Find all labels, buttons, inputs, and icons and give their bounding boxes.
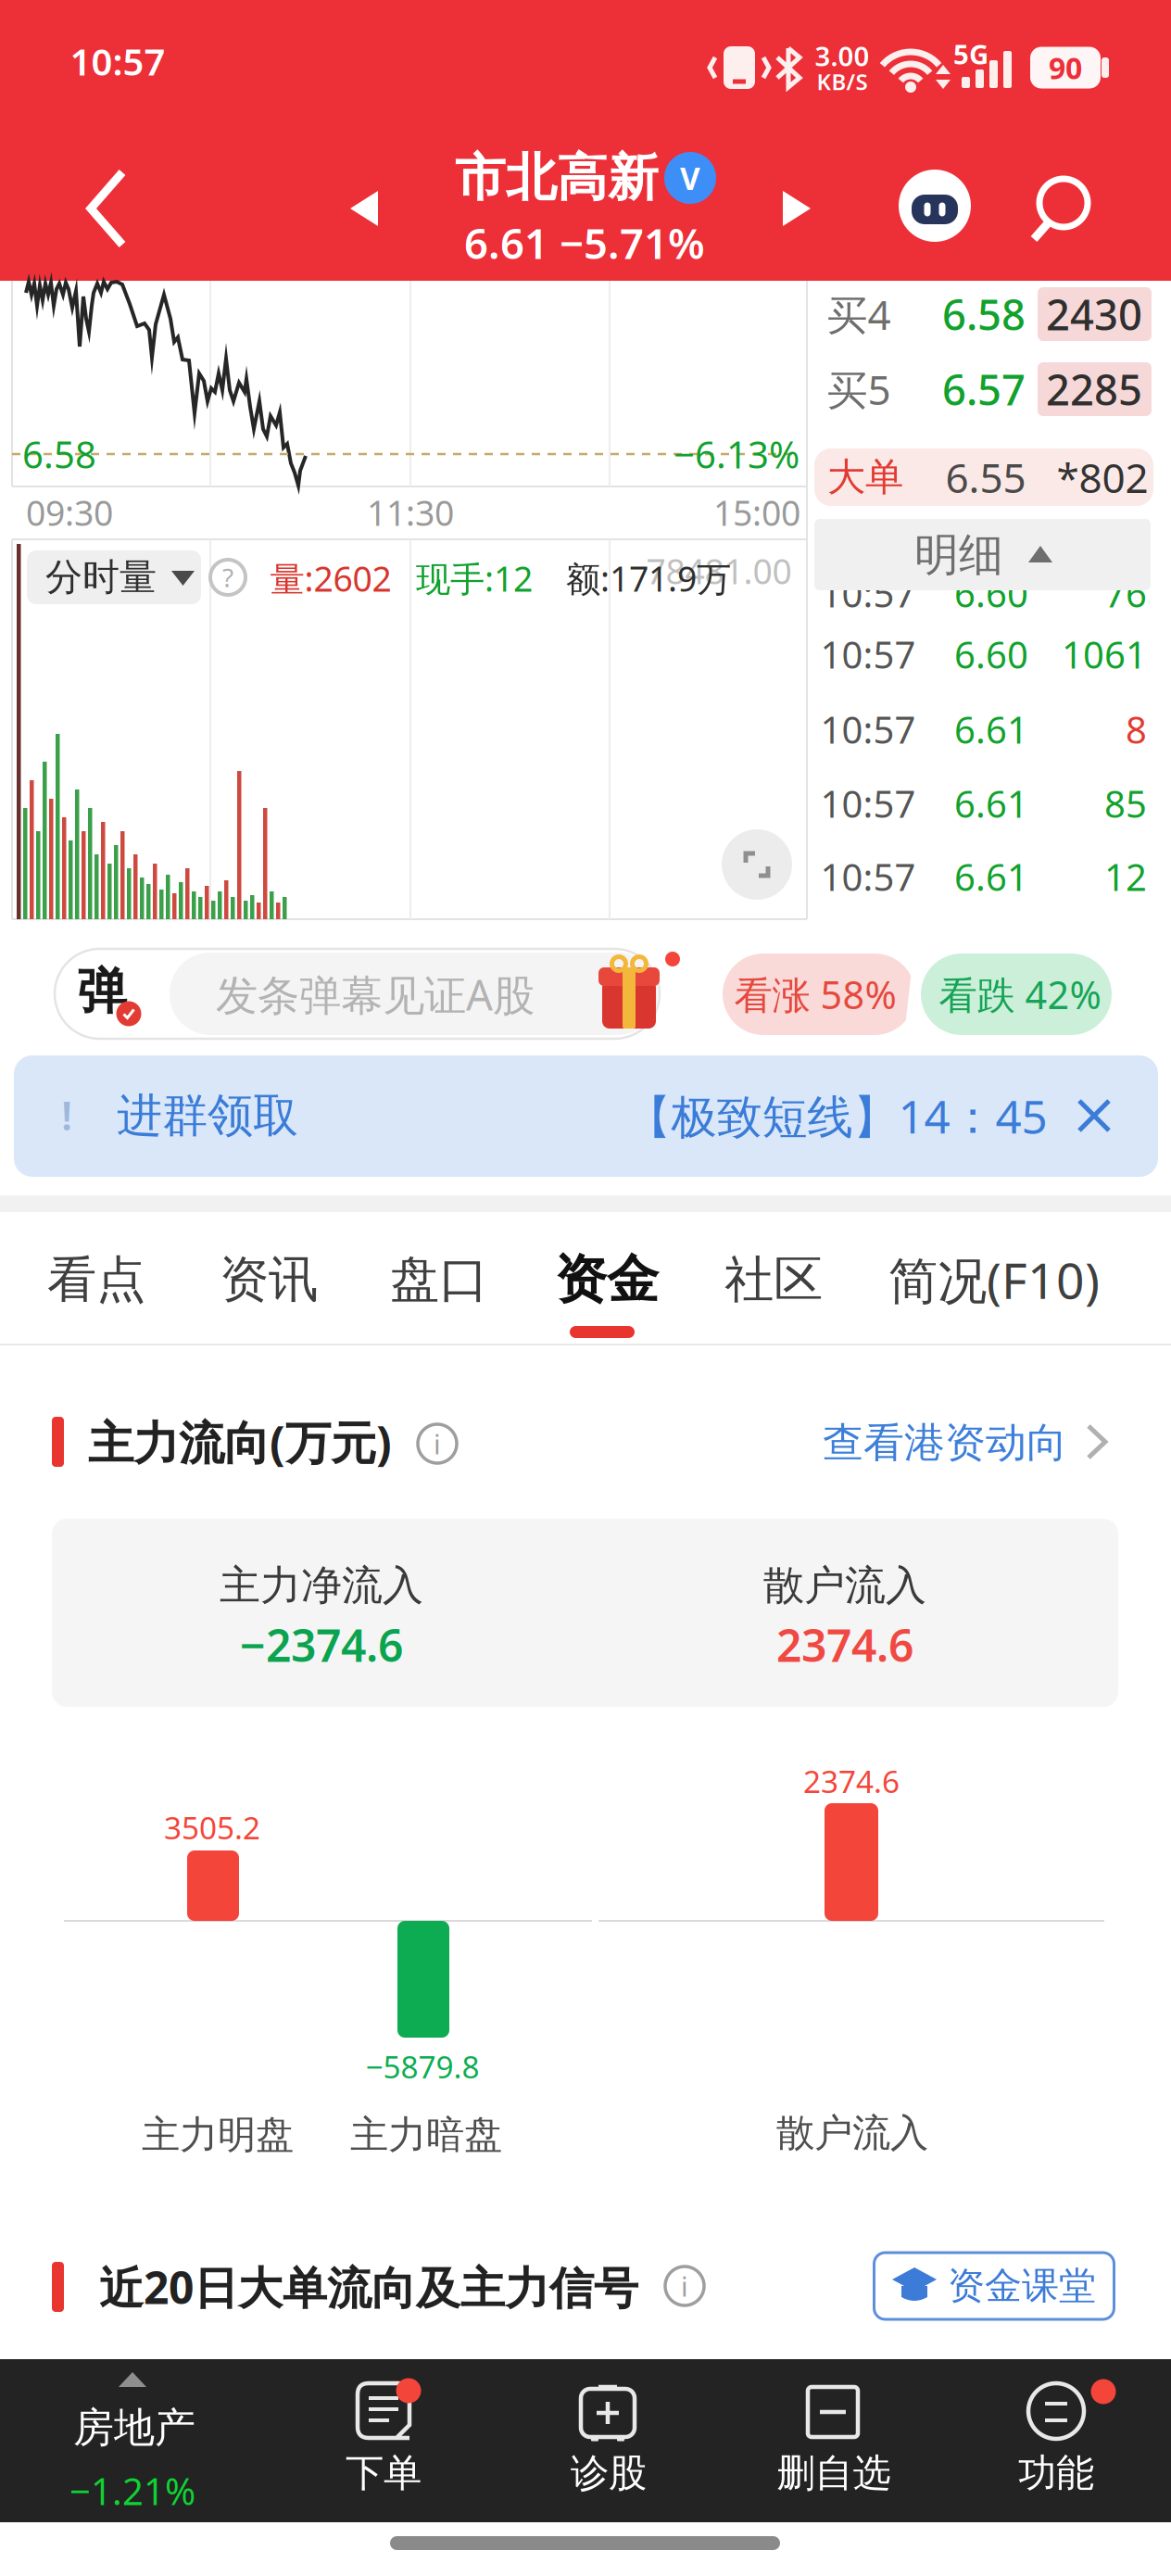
staticText: ? (222, 560, 233, 595)
button[interactable]: Assistant (899, 170, 971, 242)
staticText: 看跌 42% (939, 969, 1101, 1020)
staticText: 散户流入 (763, 1560, 926, 1610)
staticText: 09:30 (26, 489, 113, 535)
staticText: 分时量 (45, 554, 157, 600)
button[interactable]: 诊股 (534, 2359, 682, 2522)
staticText: 市北高新 (455, 147, 659, 209)
staticText: −1.21% (69, 2466, 195, 2515)
button[interactable]: 查看港资动向 (827, 1420, 1114, 1466)
staticText: 明细 (914, 528, 1003, 582)
staticText: 看涨 58% (734, 969, 896, 1020)
button[interactable]: Volume type selector (27, 550, 201, 604)
staticText: 主力流向(万元) (88, 1411, 392, 1472)
staticText: 5G (953, 36, 988, 72)
staticText: 买5 (827, 362, 891, 416)
staticText: 弹 (77, 961, 126, 1022)
button[interactable]: 看跌 42% (921, 953, 1112, 1035)
staticText: 6.61 −5.71% (464, 215, 705, 271)
staticText: 删自选 (777, 2450, 891, 2497)
staticText: 76 (1104, 568, 1147, 618)
staticText: 查看港资动向 (823, 1418, 1067, 1468)
staticText: 85 (1104, 779, 1147, 828)
staticText: 现手:12 (416, 555, 533, 601)
button[interactable]: 盘口 (390, 1249, 488, 1310)
staticText: 78481.00 (646, 548, 792, 594)
button[interactable]: 删自选 (754, 2359, 912, 2522)
staticText: 10:57 (820, 568, 916, 618)
staticText: 进群领取 (117, 1088, 298, 1144)
button[interactable]: 简况(F10) (888, 1247, 1100, 1312)
staticText: 90 (1049, 48, 1082, 87)
staticText: 大单 (827, 454, 903, 501)
staticText: 主力暗盘 (350, 2111, 502, 2158)
button[interactable]: 房地产 (42, 2359, 227, 2522)
staticText: 近20日大单流向及主力信号 (99, 2257, 638, 2316)
button[interactable]: 看点 (47, 1249, 145, 1310)
staticText: 6.61 (954, 852, 1028, 901)
button[interactable]: Gift (598, 964, 660, 1030)
staticText: 发条弹幕见证A股 (216, 966, 535, 1022)
button[interactable]: 下单 (309, 2359, 458, 2522)
staticText: 2374.6 (803, 1760, 900, 1802)
staticText: 资金课堂 (948, 2263, 1096, 2309)
staticText: 看点 (47, 1249, 145, 1310)
staticText: 6.60 (954, 568, 1028, 618)
staticText: 1061 (1062, 630, 1147, 679)
staticText: 6.60 (954, 630, 1028, 679)
staticText: 买4 (827, 287, 891, 341)
button[interactable]: Expand chart (722, 829, 792, 900)
staticText: 2430 (1046, 286, 1142, 342)
staticText: 简况(F10) (888, 1247, 1100, 1312)
button[interactable]: About big orders (664, 2266, 705, 2306)
staticText: 下单 (346, 2450, 422, 2497)
staticText: KB/S (817, 67, 868, 96)
button[interactable]: 大单 (814, 448, 1153, 506)
staticText: −2374.6 (240, 1615, 403, 1674)
staticText: −5879.8 (365, 2046, 479, 2087)
staticText: 3.00 (815, 38, 869, 74)
staticText: 盘口 (390, 1249, 488, 1310)
staticText: 10:57 (820, 852, 916, 901)
button[interactable]: 社区 (724, 1249, 823, 1310)
button[interactable]: 资金课堂 (874, 2253, 1114, 2319)
button[interactable]: Search (1030, 172, 1101, 246)
staticText: 3505.2 (164, 1807, 260, 1848)
button[interactable]: Back (85, 167, 130, 250)
staticText: −6.13% (674, 429, 800, 479)
staticText: 6.57 (942, 361, 1026, 417)
staticText: 6.61 (954, 705, 1028, 754)
staticText: 15:00 (713, 489, 800, 535)
staticText: 主力净流入 (220, 1560, 423, 1610)
button[interactable]: 看涨 58% (723, 953, 915, 1035)
button[interactable]: 资讯 (220, 1249, 318, 1310)
button[interactable]: Close banner (1076, 1097, 1113, 1134)
staticText: 社区 (724, 1249, 823, 1310)
staticText: V (680, 157, 700, 198)
button[interactable]: Trade details (814, 519, 1151, 590)
button[interactable]: 功能 (977, 2359, 1135, 2522)
button[interactable]: 买5 (814, 359, 1152, 420)
staticText: 10:57 (70, 37, 165, 86)
staticText: 功能 (1018, 2450, 1094, 2497)
staticText: 资金 (555, 1248, 659, 1312)
staticText: 主力明盘 (142, 2111, 294, 2158)
staticText: 2374.6 (776, 1615, 913, 1674)
button[interactable]: 买4 (814, 284, 1152, 345)
staticText: 散户流入 (776, 2110, 928, 2157)
staticText: 额:171.9万 (566, 555, 731, 601)
staticText: 6.55 (945, 450, 1026, 504)
staticText: *802 (1057, 450, 1148, 504)
staticText: ! (61, 1088, 72, 1142)
staticText: 房地产 (73, 2403, 195, 2453)
staticText: 10:57 (820, 630, 916, 679)
button[interactable]: Help (208, 557, 248, 598)
staticText: 10:57 (820, 779, 916, 828)
button[interactable]: About main flow (417, 1423, 458, 1464)
button[interactable]: Previous stock (350, 191, 378, 226)
button[interactable]: Next stock (783, 191, 811, 226)
staticText: 2285 (1046, 361, 1142, 417)
staticText: 10:57 (820, 705, 916, 754)
staticText: 【极致短线】14：45 (626, 1085, 1047, 1146)
button[interactable]: 资金 (555, 1248, 659, 1312)
button[interactable]: Send comment (55, 949, 660, 1039)
